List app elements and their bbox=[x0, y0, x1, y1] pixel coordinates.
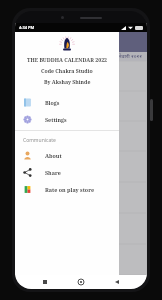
button[interactable]: Recents bbox=[39, 276, 51, 288]
staticText: By Akshay Shinde bbox=[44, 78, 91, 85]
staticText: २९ bbox=[44, 185, 52, 195]
other: Rate on play store bbox=[23, 185, 32, 194]
other: Blogs bbox=[23, 98, 32, 107]
staticText: Code Chakra Studio bbox=[41, 67, 93, 74]
staticText: Settings bbox=[45, 116, 67, 123]
staticText: About bbox=[45, 152, 62, 159]
other: About bbox=[23, 151, 32, 160]
staticText: Rate on play store bbox=[45, 186, 95, 193]
staticText: २० bbox=[44, 154, 52, 164]
other: Share bbox=[23, 168, 32, 177]
button[interactable]: Share bbox=[15, 164, 119, 181]
staticText: २६ bbox=[44, 64, 52, 74]
staticText: THE BUDDHA CALENDAR 2022 bbox=[27, 56, 107, 63]
staticText: Blogs bbox=[45, 99, 60, 106]
staticText: 4:34 PM bbox=[19, 25, 35, 30]
button[interactable]: Blogs bbox=[15, 94, 119, 111]
staticText: Communicate bbox=[23, 137, 56, 144]
button[interactable]: About bbox=[15, 147, 119, 164]
staticText: २० bbox=[110, 124, 118, 134]
button[interactable]: Rate on play store bbox=[15, 181, 119, 198]
staticText: २९ bbox=[44, 124, 52, 134]
staticText: जानेवारी २०२२ bbox=[113, 53, 143, 60]
button[interactable]: Back bbox=[111, 276, 123, 288]
staticText: ९८ bbox=[44, 94, 52, 104]
staticText: Share bbox=[45, 169, 61, 176]
other: Settings bbox=[23, 115, 32, 124]
button[interactable]: Home bbox=[75, 276, 87, 288]
button[interactable]: Settings bbox=[15, 111, 119, 128]
staticText: शुद्ध bbox=[46, 116, 51, 120]
